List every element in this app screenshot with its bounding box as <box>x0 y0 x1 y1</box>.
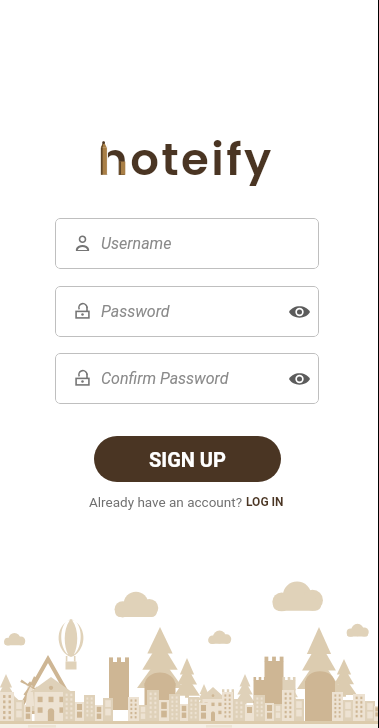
button[interactable]: Password <box>55 286 319 337</box>
staticText: SIGN UP <box>149 448 226 471</box>
button[interactable]: Show password <box>283 296 315 328</box>
button[interactable]: SIGN UP <box>94 436 281 482</box>
staticText: Username <box>101 234 172 253</box>
button[interactable]: Username <box>55 218 319 269</box>
button[interactable]: LOG IN <box>246 495 284 509</box>
staticText: Already have an account? <box>89 494 246 510</box>
button[interactable]: Confirm Password <box>55 353 319 404</box>
staticText: Confirm Password <box>101 369 229 388</box>
staticText: LOG IN <box>246 495 284 509</box>
staticText: hoteify <box>98 128 274 186</box>
staticText: Password <box>101 302 170 321</box>
button[interactable]: Show password <box>283 363 315 395</box>
